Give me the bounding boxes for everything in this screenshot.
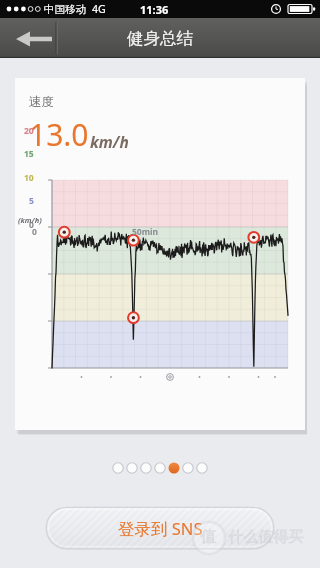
button[interactable]: Page 4 xyxy=(153,461,167,475)
staticText: 15 xyxy=(24,148,34,160)
staticText: (km/h) xyxy=(18,215,42,225)
staticText: 13.0 xyxy=(29,114,89,155)
staticText: 什么值得买 xyxy=(228,528,303,547)
staticText: 10 xyxy=(24,172,34,184)
staticText: 4G xyxy=(92,2,106,16)
button[interactable]: Page 7 xyxy=(195,461,209,475)
button[interactable]: Back xyxy=(0,18,54,58)
staticText: 中国移动 xyxy=(44,3,86,16)
staticText: 值 xyxy=(200,527,216,547)
staticText: 0 xyxy=(32,226,37,238)
staticText: 健身总结 xyxy=(127,28,193,49)
button[interactable]: Page 6 xyxy=(181,461,195,475)
button[interactable]: Page 1 xyxy=(111,461,125,475)
staticText: 5 xyxy=(29,195,34,207)
staticText: 20 xyxy=(24,125,34,137)
staticText: 50min xyxy=(132,226,159,238)
button[interactable]: Page 2 xyxy=(125,461,139,475)
staticText: 11:36 xyxy=(140,2,169,17)
staticText: 0 xyxy=(29,219,34,231)
staticText: 登录到 SNS xyxy=(118,517,203,540)
button[interactable]: 登录到 SNS xyxy=(45,506,275,550)
button[interactable]: Page 5 xyxy=(167,461,181,475)
staticText: 速度 xyxy=(29,94,54,110)
staticText: km/h xyxy=(90,131,129,152)
button[interactable]: Page 3 xyxy=(139,461,153,475)
